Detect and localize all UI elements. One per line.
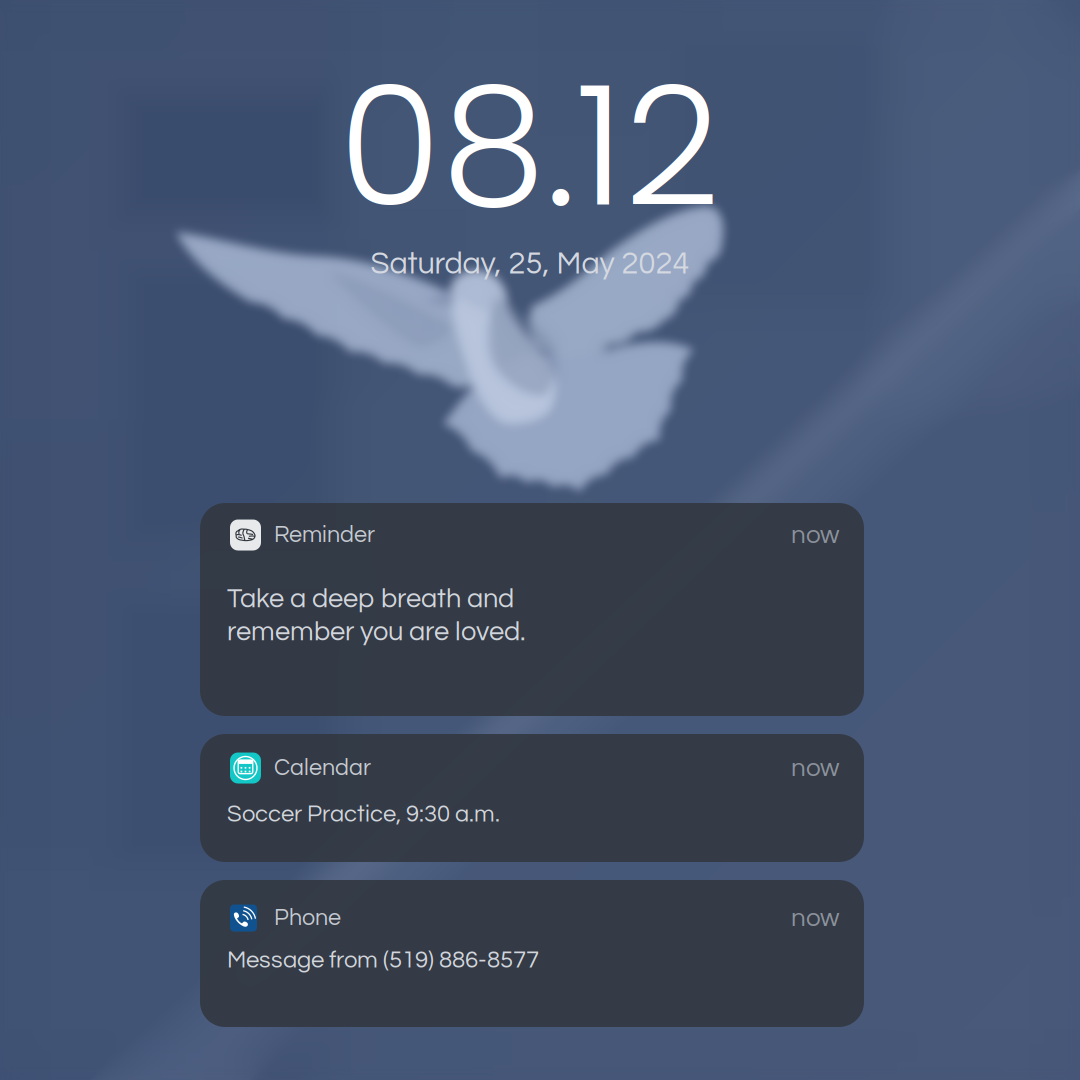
staticText: remember you are loved. <box>227 618 526 646</box>
staticText: Saturday, 25, May 2024 <box>370 248 689 280</box>
staticText: now <box>791 905 839 931</box>
staticText: Take a deep breath and <box>227 585 514 613</box>
staticText: Phone <box>274 906 341 930</box>
staticText: Calendar <box>274 756 371 780</box>
staticText: now <box>791 522 839 548</box>
staticText: now <box>791 755 839 781</box>
button[interactable]: Phone <box>200 880 864 1027</box>
staticText: Message from (519) 886-8577 <box>227 948 539 973</box>
staticText: Soccer Practice, 9:30 a.m. <box>227 802 500 826</box>
staticText: Reminder <box>274 523 375 547</box>
button[interactable]: Calendar <box>200 734 864 862</box>
staticText: 08.12 <box>338 30 719 263</box>
button[interactable]: Reminder <box>200 503 864 716</box>
